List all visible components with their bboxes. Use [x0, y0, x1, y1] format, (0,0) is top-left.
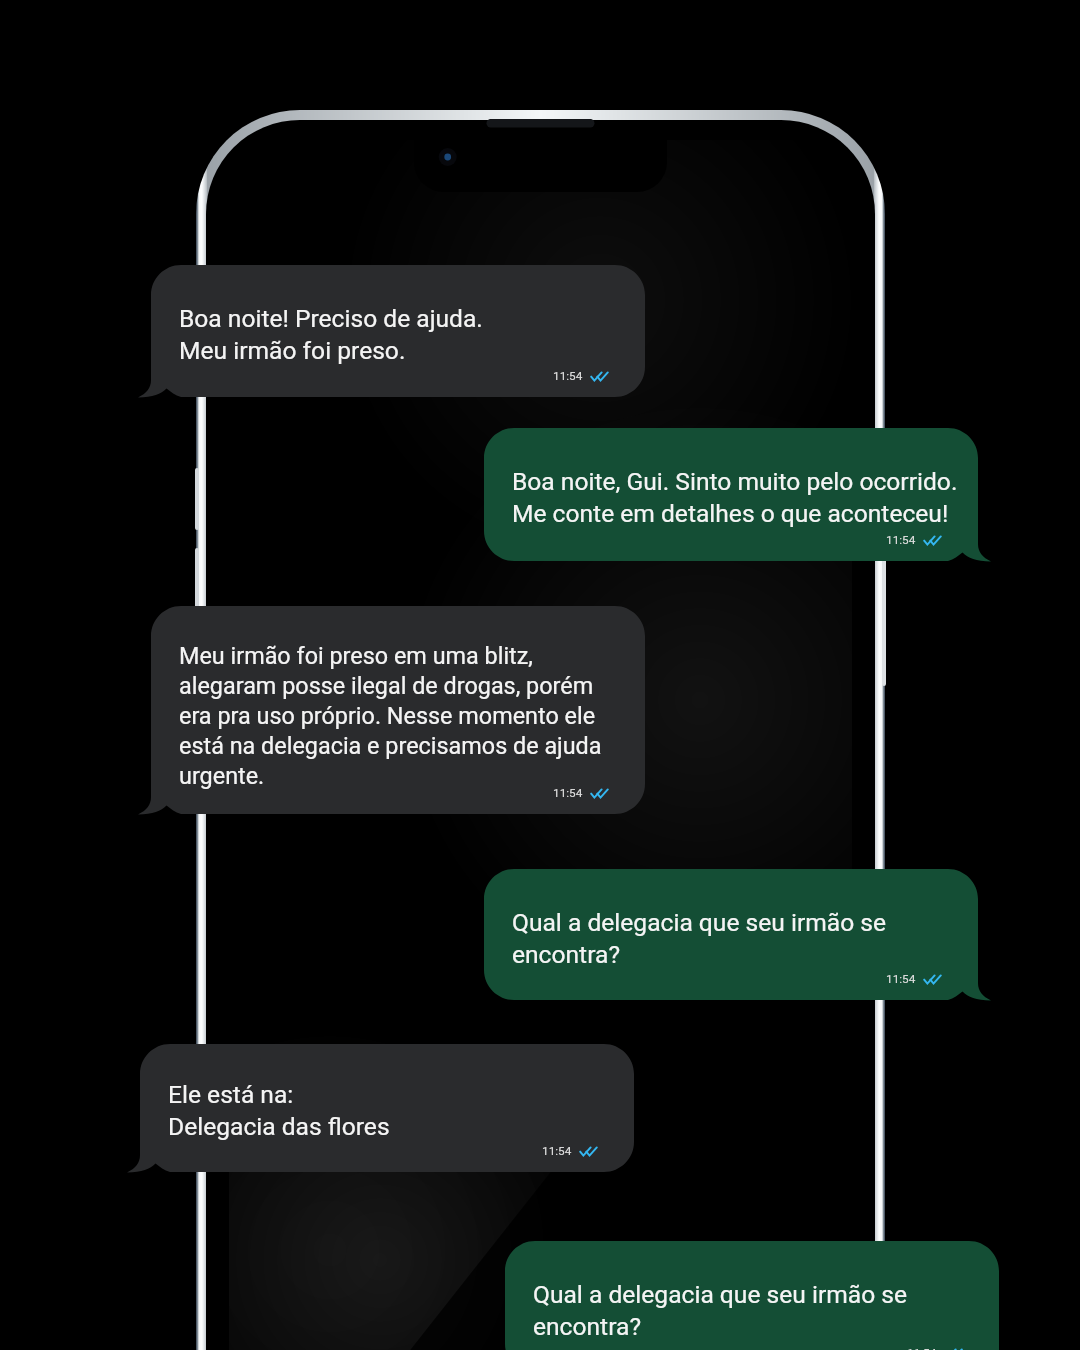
button[interactable]: Boa noite, Gui. Sinto muito pelo ocorrid… [484, 428, 978, 561]
staticText: Delegacia das flores [168, 1110, 390, 1142]
staticText: Qual a delegacia que seu irmão se [512, 906, 887, 938]
staticText: era pra uso próprio. Nesse momento ele [179, 700, 596, 730]
staticText: urgente. [179, 760, 265, 790]
button[interactable]: Meu irmão foi preso em uma blitz, [151, 606, 645, 814]
staticText: 11:54 [542, 1144, 572, 1158]
staticText: Meu irmão foi preso em uma blitz, [179, 640, 533, 670]
staticText: Me conte em detalhes o que aconteceu! [512, 497, 949, 529]
staticText: 11:54 [907, 1346, 937, 1350]
staticText: 11:54 [886, 972, 916, 986]
other: Message read [580, 1147, 595, 1156]
staticText: 11:54 [553, 369, 583, 383]
staticText: alegaram posse ilegal de drogas, porém [179, 670, 594, 700]
staticText: Ele está na: [168, 1078, 294, 1110]
other: Message read [924, 975, 939, 984]
other: Message read [591, 372, 606, 381]
other: Message read [924, 536, 939, 545]
staticText: Boa noite, Gui. Sinto muito pelo ocorrid… [512, 465, 956, 497]
staticText: encontra? [533, 1310, 642, 1342]
staticText: Meu irmão foi preso. [179, 334, 406, 366]
button[interactable]: Boa noite! Preciso de ajuda. [151, 265, 645, 397]
staticText: Boa noite! Preciso de ajuda. [179, 302, 483, 334]
button[interactable]: Qual a delegacia que seu irmão se [484, 869, 978, 1000]
staticText: encontra? [512, 938, 621, 970]
staticText: 11:54 [553, 786, 583, 800]
other: Message read [591, 789, 606, 798]
other: Message read [945, 1349, 960, 1350]
button[interactable]: Ele está na: [140, 1044, 634, 1172]
staticText: está na delegacia e precisamos de ajuda [179, 730, 602, 760]
staticText: 11:54 [886, 533, 916, 547]
staticText: Qual a delegacia que seu irmão se [533, 1278, 908, 1310]
button[interactable]: Qual a delegacia que seu irmão se [505, 1241, 999, 1350]
